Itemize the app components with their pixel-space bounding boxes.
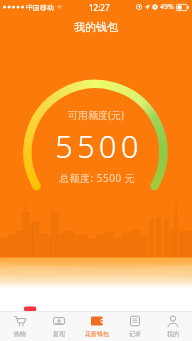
staticText: 可用额度(元)	[68, 108, 124, 122]
staticText: 花薪钱包	[85, 330, 109, 338]
other: Withdraw	[53, 315, 65, 327]
button[interactable]: Wallet	[78, 311, 116, 341]
staticText: 5500	[55, 125, 143, 167]
staticText: 总额度: 5500 元	[59, 171, 136, 185]
button[interactable]: Shopping	[0, 311, 39, 341]
staticText: 我的	[167, 330, 179, 338]
staticText: 购物	[14, 330, 26, 338]
staticText: 中国移动	[26, 3, 54, 12]
other: Shopping	[14, 315, 26, 327]
button[interactable]: Records	[116, 311, 154, 341]
staticText: 49%	[160, 2, 174, 12]
other: Records	[129, 315, 141, 327]
button[interactable]: Profile	[154, 311, 192, 341]
staticText: 12:27	[89, 2, 110, 13]
other: Wallet	[91, 315, 103, 327]
other: Profile	[167, 315, 179, 327]
button[interactable]: Withdraw	[39, 311, 78, 341]
staticText: 我的钱包	[74, 20, 118, 34]
staticText: 记录	[129, 330, 141, 338]
staticText: 提现	[53, 330, 65, 338]
